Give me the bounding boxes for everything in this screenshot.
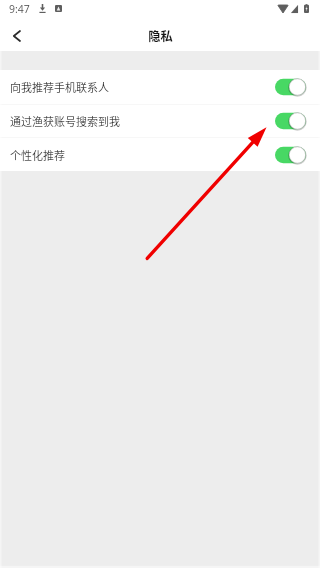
staticText: 通过渔获账号搜索到我 <box>10 113 120 129</box>
button[interactable]: Toggle <box>275 78 306 96</box>
button[interactable]: Toggle <box>275 112 306 130</box>
button[interactable]: 个性化推荐 <box>0 138 320 171</box>
button[interactable]: Back <box>0 21 30 51</box>
staticText: 9:47 <box>9 2 30 16</box>
button[interactable]: Toggle <box>275 146 306 164</box>
staticText: 个性化推荐 <box>10 147 65 163</box>
staticText: 向我推荐手机联系人 <box>10 79 109 95</box>
staticText: 隐私 <box>148 27 173 45</box>
button[interactable]: 通过渔获账号搜索到我 <box>0 105 320 137</box>
button[interactable]: 向我推荐手机联系人 <box>0 70 320 104</box>
